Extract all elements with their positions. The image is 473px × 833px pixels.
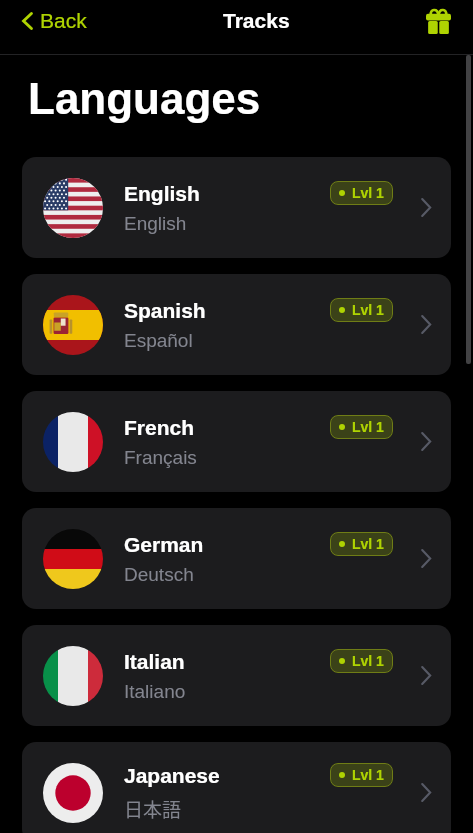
button[interactable]: German	[22, 508, 451, 609]
button[interactable]: Italian	[22, 625, 451, 726]
staticText: Italian	[124, 650, 185, 673]
staticText: Back	[40, 9, 87, 32]
staticText: English	[124, 182, 200, 205]
staticText: Lvl 1	[352, 185, 384, 201]
staticText: Japanese	[124, 764, 220, 787]
button[interactable]: Lvl 1	[330, 763, 393, 787]
staticText: Lvl 1	[352, 419, 384, 435]
staticText: 日本語	[124, 795, 182, 823]
button[interactable]: Gifts	[419, 2, 457, 40]
button[interactable]: Back	[0, 1, 93, 40]
staticText: Lvl 1	[352, 653, 384, 669]
staticText: Tracks	[223, 9, 290, 32]
button[interactable]: French	[22, 391, 451, 492]
staticText: Español	[124, 330, 193, 351]
staticText: Languages	[28, 74, 261, 123]
staticText: Lvl 1	[352, 302, 384, 318]
button[interactable]: English	[22, 157, 451, 258]
staticText: Français	[124, 447, 197, 468]
button[interactable]: Lvl 1	[330, 415, 393, 439]
button[interactable]: Lvl 1	[330, 298, 393, 322]
button[interactable]: Lvl 1	[330, 649, 393, 673]
button[interactable]: Lvl 1	[330, 181, 393, 205]
staticText: Lvl 1	[352, 536, 384, 552]
staticText: German	[124, 533, 204, 556]
staticText: English	[124, 213, 187, 234]
staticText: Lvl 1	[352, 767, 384, 783]
button[interactable]: Japanese	[22, 742, 451, 833]
button[interactable]: Spanish	[22, 274, 451, 375]
staticText: Deutsch	[124, 564, 194, 585]
staticText: Spanish	[124, 299, 206, 322]
button[interactable]: Lvl 1	[330, 532, 393, 556]
staticText: Italiano	[124, 681, 186, 702]
staticText: French	[124, 416, 195, 439]
